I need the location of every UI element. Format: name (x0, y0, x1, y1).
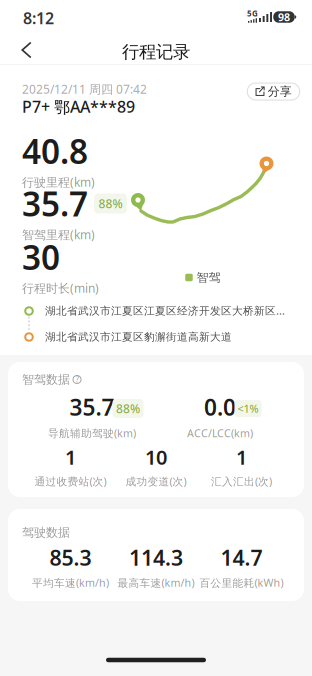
button[interactable]: 返回 (3, 34, 45, 65)
button[interactable]: 分享 (247, 83, 300, 100)
staticText: 行驶里程(km) (22, 174, 95, 190)
staticText: 成功变道(次) (125, 474, 186, 488)
staticText: ACC/LCC(km) (187, 426, 253, 440)
staticText: 行程时长(min) (22, 280, 99, 296)
staticText: 行程记录 (122, 41, 190, 63)
staticText: 湖北省武汉市江夏区豹澥街道高新大道 (45, 330, 232, 343)
staticText: 平均车速(km/h) (32, 576, 109, 590)
staticText: 智驾数据 (22, 372, 70, 387)
staticText: 智驾里程(km) (22, 227, 95, 243)
staticText: 30 (22, 235, 60, 279)
staticText: 分享 (268, 84, 292, 99)
staticText: 40.8 (22, 129, 88, 173)
staticText: 10 (145, 444, 167, 470)
staticText: 8:12 (23, 7, 54, 29)
staticText: 85.3 (49, 543, 91, 572)
staticText: 14.7 (220, 543, 262, 572)
staticText: 最高车速(km/h) (117, 576, 194, 590)
staticText: 98 (278, 10, 290, 24)
staticText: 35.7 (69, 392, 114, 422)
staticText: 驾驶数据 (22, 525, 70, 540)
staticText: 汇入汇出(次) (211, 474, 272, 488)
staticText: 1 (65, 444, 76, 470)
staticText: P7+ 鄂AA***89 (22, 96, 135, 117)
staticText: ? (75, 374, 78, 385)
staticText: 智驾 (196, 270, 220, 285)
staticText: 114.3 (129, 543, 183, 572)
button[interactable]: 智驾数据说明 (73, 374, 81, 385)
staticText: <1% (237, 401, 258, 416)
staticText: 35.7 (22, 181, 88, 226)
staticText: 88% (116, 400, 140, 416)
staticText: 2025/12/11 周四 07:42 (22, 81, 147, 97)
staticText: 导航辅助驾驶(km) (48, 426, 136, 440)
staticText: 百公里能耗(kWh) (199, 576, 283, 590)
staticText: 1 (236, 444, 247, 470)
staticText: 通过收费站(次) (34, 474, 106, 488)
staticText: 0.0 (204, 392, 236, 422)
staticText: 湖北省武汉市江夏区江夏区经济开发区大桥新区... (45, 303, 285, 318)
staticText: 5G (247, 8, 258, 19)
staticText: 88% (98, 196, 122, 211)
